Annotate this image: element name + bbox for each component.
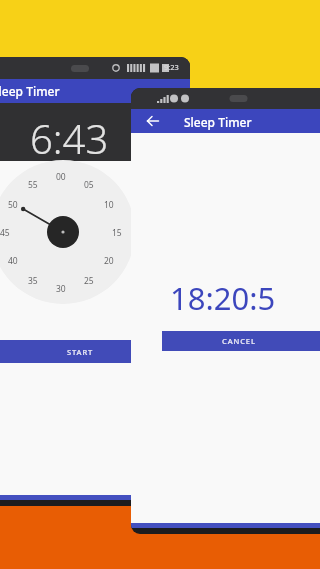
staticText: 05 (84, 179, 94, 191)
staticText: CANCEL (222, 336, 256, 346)
staticText: 9:23 (164, 62, 179, 72)
button[interactable]: Sleep Timer (0, 79, 190, 103)
button[interactable]: START (0, 340, 190, 363)
staticText: 30 (56, 283, 66, 295)
button[interactable]: Back (141, 109, 165, 133)
staticText: 20 (104, 255, 114, 267)
staticText: 55 (28, 179, 38, 191)
staticText: Sleep Timer (184, 114, 252, 130)
button[interactable]: CANCEL (162, 331, 320, 351)
staticText: 35 (28, 275, 38, 287)
staticText: 10 (104, 199, 114, 211)
staticText: 00 (56, 171, 66, 183)
staticText: 50 (8, 199, 18, 211)
staticText: 40 (8, 255, 18, 267)
staticText: Sleep Timer (0, 83, 60, 99)
staticText: 18:20:5 (170, 277, 276, 319)
staticText: 25 (84, 275, 94, 287)
staticText: START (67, 347, 94, 357)
staticText: 15 (112, 227, 122, 239)
staticText: 45 (0, 227, 10, 239)
staticText: 6:43 (30, 111, 109, 165)
